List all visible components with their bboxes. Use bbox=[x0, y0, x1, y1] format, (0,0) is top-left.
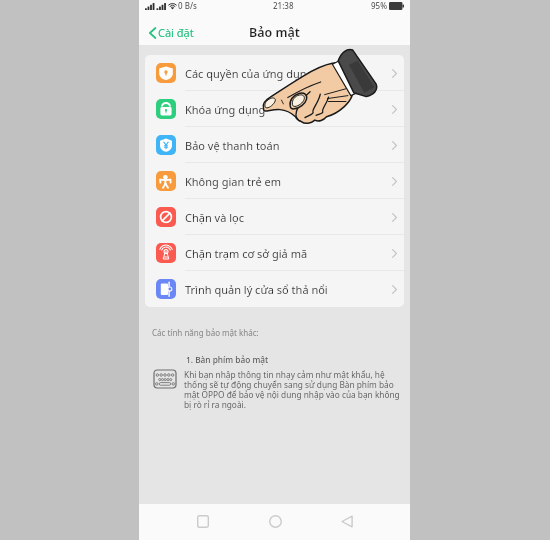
staticText: 95% bbox=[371, 0, 387, 11]
staticText: 0 B/s bbox=[178, 0, 197, 11]
staticText: Bảo vệ thanh toán bbox=[185, 138, 392, 153]
staticText: 21:38 bbox=[273, 0, 294, 11]
button[interactable]: Bảo vệ thanh toán bbox=[145, 127, 404, 163]
button[interactable]: Recent apps bbox=[183, 503, 223, 539]
staticText: Không gian trẻ em bbox=[185, 174, 392, 189]
staticText: Trình quản lý cửa sổ thả nổi bbox=[185, 282, 392, 297]
staticText: Chặn trạm cơ sở giả mã bbox=[185, 246, 392, 261]
staticText: Các tính năng bảo mật khác: bbox=[152, 327, 259, 338]
button[interactable]: Home bbox=[255, 503, 295, 539]
staticText: Khi bạn nhập thông tin nhạy cảm như mật … bbox=[184, 369, 401, 410]
staticText: Cài đặt bbox=[158, 25, 194, 40]
button[interactable]: Trình quản lý cửa sổ thả nổi bbox=[145, 271, 404, 307]
staticText: Bảo mật bbox=[249, 24, 300, 41]
button[interactable]: Các quyền của ứng dụng bbox=[145, 55, 404, 91]
button[interactable]: Chặn và lọc bbox=[145, 199, 404, 235]
button[interactable]: Không gian trẻ em bbox=[145, 163, 404, 199]
button[interactable]: Chặn trạm cơ sở giả mã bbox=[145, 235, 404, 271]
staticText: Khóa ứng dụng bbox=[185, 102, 392, 117]
button[interactable]: Khóa ứng dụng bbox=[145, 91, 404, 127]
staticText: Các quyền của ứng dụng bbox=[185, 66, 392, 81]
staticText: 1. Bàn phím bảo mật bbox=[186, 354, 269, 365]
button[interactable]: Cài đặt bbox=[139, 22, 200, 43]
staticText: Chặn và lọc bbox=[185, 210, 392, 225]
button[interactable]: Back bbox=[327, 503, 367, 539]
